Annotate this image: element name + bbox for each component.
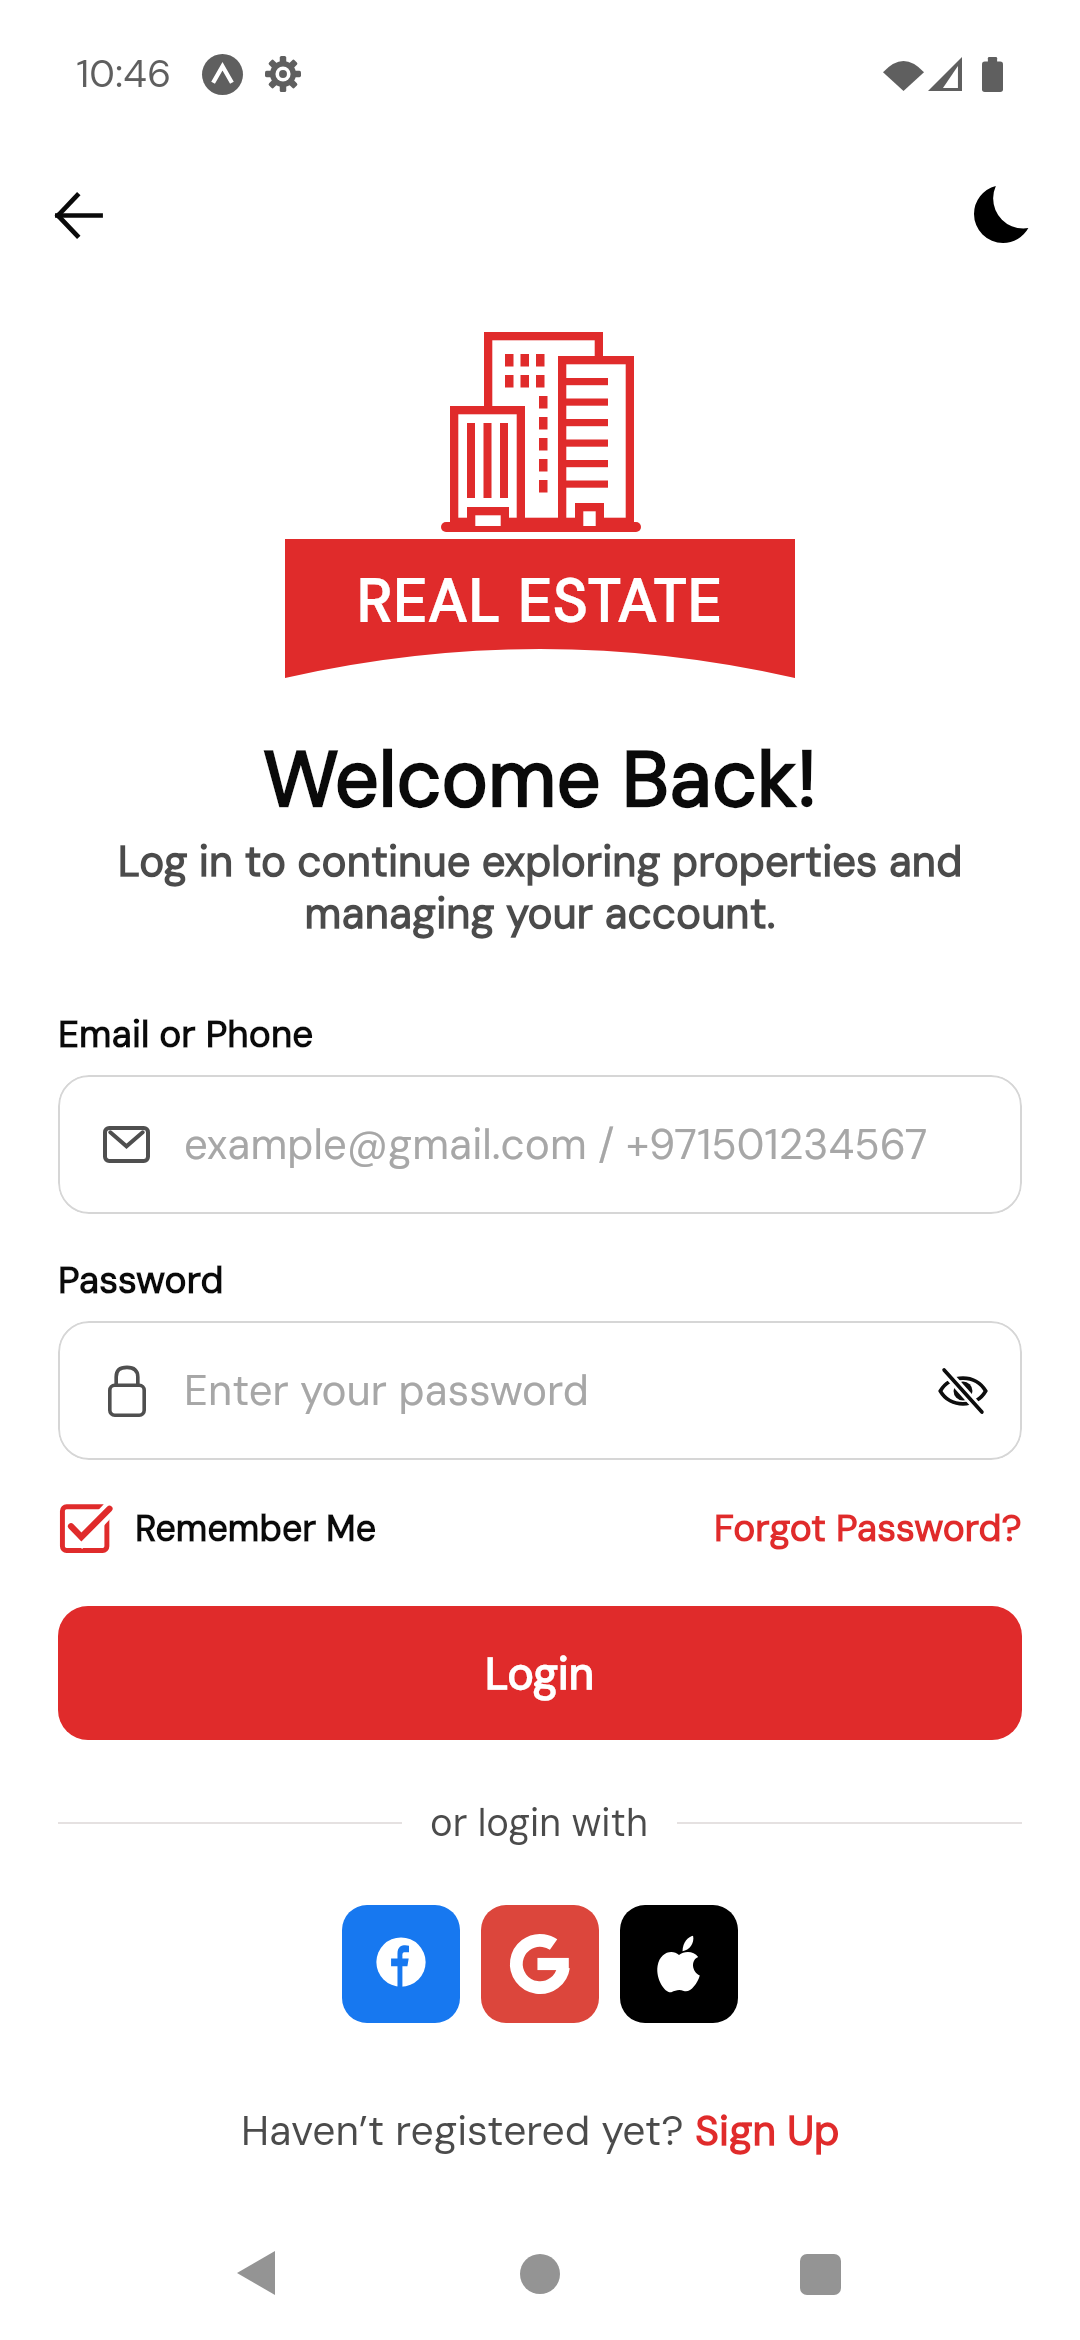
staticText: REAL ESTATE <box>357 562 723 639</box>
button[interactable]: Sign in with Facebook <box>342 1905 460 2023</box>
staticText: Remember Me <box>135 1505 377 1552</box>
button[interactable]: example@gmail.com / +971501234567 <box>58 1075 1022 1214</box>
staticText: Login <box>485 1645 595 1702</box>
staticText: Email or Phone <box>58 1010 314 1058</box>
button[interactable]: Forgot Password? <box>714 1504 1022 1552</box>
button[interactable]: Login <box>58 1606 1022 1740</box>
staticText: Welcome Back! <box>0 729 1080 831</box>
button[interactable]: Remember Me <box>58 1503 540 1553</box>
button[interactable]: Back <box>221 2238 291 2308</box>
staticText: Enter your password <box>184 1363 589 1418</box>
button[interactable]: Back <box>41 178 115 252</box>
staticText: Haven’t registered yet? <box>241 2104 695 2157</box>
staticText: example@gmail.com / +971501234567 <box>184 1117 928 1172</box>
button[interactable]: Home <box>505 2239 575 2309</box>
button[interactable]: Show password <box>932 1360 994 1422</box>
staticText: Password <box>58 1256 224 1304</box>
staticText: or login with <box>430 1798 649 1847</box>
button[interactable]: Sign in with Apple <box>620 1905 738 2023</box>
button[interactable]: Sign Up <box>695 2104 840 2157</box>
button[interactable]: Recents <box>785 2239 855 2309</box>
button[interactable]: Enter your password <box>58 1321 1022 1460</box>
button[interactable]: Sign in with Google <box>481 1905 599 2023</box>
button[interactable]: Dark mode <box>966 177 1040 251</box>
staticText: 10:46 <box>76 48 172 99</box>
staticText: Log in to continue exploring properties … <box>0 834 1080 941</box>
